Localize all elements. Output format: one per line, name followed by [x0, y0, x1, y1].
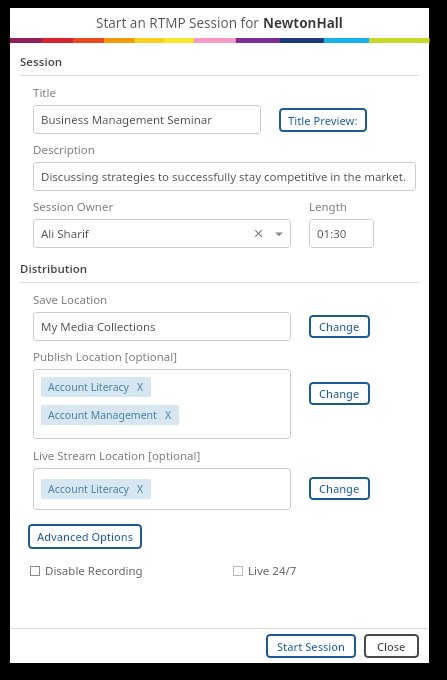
- staticText: X: [165, 408, 172, 422]
- staticText: Change: [319, 386, 360, 401]
- button[interactable]: Title Preview:: [279, 108, 367, 132]
- button[interactable]: Advanced Options: [28, 524, 142, 549]
- button[interactable]: Clear: [254, 229, 263, 238]
- staticText: 01:30: [317, 226, 366, 242]
- staticText: Change: [319, 481, 360, 496]
- staticText: Start an RTMP Session for: [96, 14, 263, 32]
- staticText: Account Literacy: [48, 380, 129, 394]
- staticText: Distribution: [20, 261, 88, 277]
- button[interactable]: Live 24/7: [233, 563, 297, 579]
- staticText: Start Session: [277, 639, 345, 654]
- staticText: Close: [377, 639, 406, 654]
- button[interactable]: Start Session: [266, 634, 356, 658]
- button[interactable]: Close: [364, 634, 419, 658]
- button[interactable]: Change: [309, 382, 370, 405]
- staticText: Advanced Options: [37, 529, 133, 544]
- staticText: Live Stream Location [optional]: [33, 448, 201, 464]
- staticText: Title Preview:: [288, 113, 358, 128]
- button[interactable]: Account Literacy: [33, 369, 291, 439]
- button[interactable]: My Media Collections: [33, 312, 291, 341]
- button[interactable]: Change: [309, 315, 370, 338]
- button[interactable]: Ali Sharif: [33, 219, 291, 248]
- staticText: Length: [309, 199, 347, 215]
- staticText: Session: [20, 54, 63, 70]
- staticText: Discussing strategies to successfully st…: [41, 169, 408, 185]
- staticText: X: [137, 482, 144, 496]
- button[interactable]: Discussing strategies to successfully st…: [33, 162, 416, 191]
- staticText: Save Location: [33, 292, 108, 308]
- staticText: My Media Collections: [41, 319, 283, 335]
- staticText: X: [137, 380, 144, 394]
- button[interactable]: Open dropdown: [275, 230, 283, 238]
- button[interactable]: Account Literacy: [41, 377, 151, 397]
- staticText: Live 24/7: [248, 563, 297, 579]
- button[interactable]: Change: [309, 477, 370, 500]
- button[interactable]: Account Literacy: [41, 479, 151, 499]
- staticText: Change: [319, 319, 360, 334]
- staticText: Ali Sharif: [41, 226, 254, 242]
- button[interactable]: Disable Recording: [30, 563, 143, 579]
- staticText: Business Management Seminar: [41, 112, 253, 128]
- button[interactable]: Account Literacy: [33, 468, 291, 510]
- staticText: Title: [33, 85, 56, 101]
- staticText: Account Literacy: [48, 482, 129, 496]
- staticText: Disable Recording: [45, 563, 143, 579]
- staticText: Description: [33, 142, 95, 158]
- button[interactable]: Business Management Seminar: [33, 105, 261, 134]
- button[interactable]: 01:30: [309, 219, 374, 248]
- staticText: Session Owner: [33, 199, 114, 215]
- button[interactable]: Account Management: [41, 405, 179, 425]
- staticText: Publish Location [optional]: [33, 349, 178, 365]
- staticText: NewtonHall: [263, 14, 343, 32]
- staticText: Account Management: [48, 408, 157, 422]
